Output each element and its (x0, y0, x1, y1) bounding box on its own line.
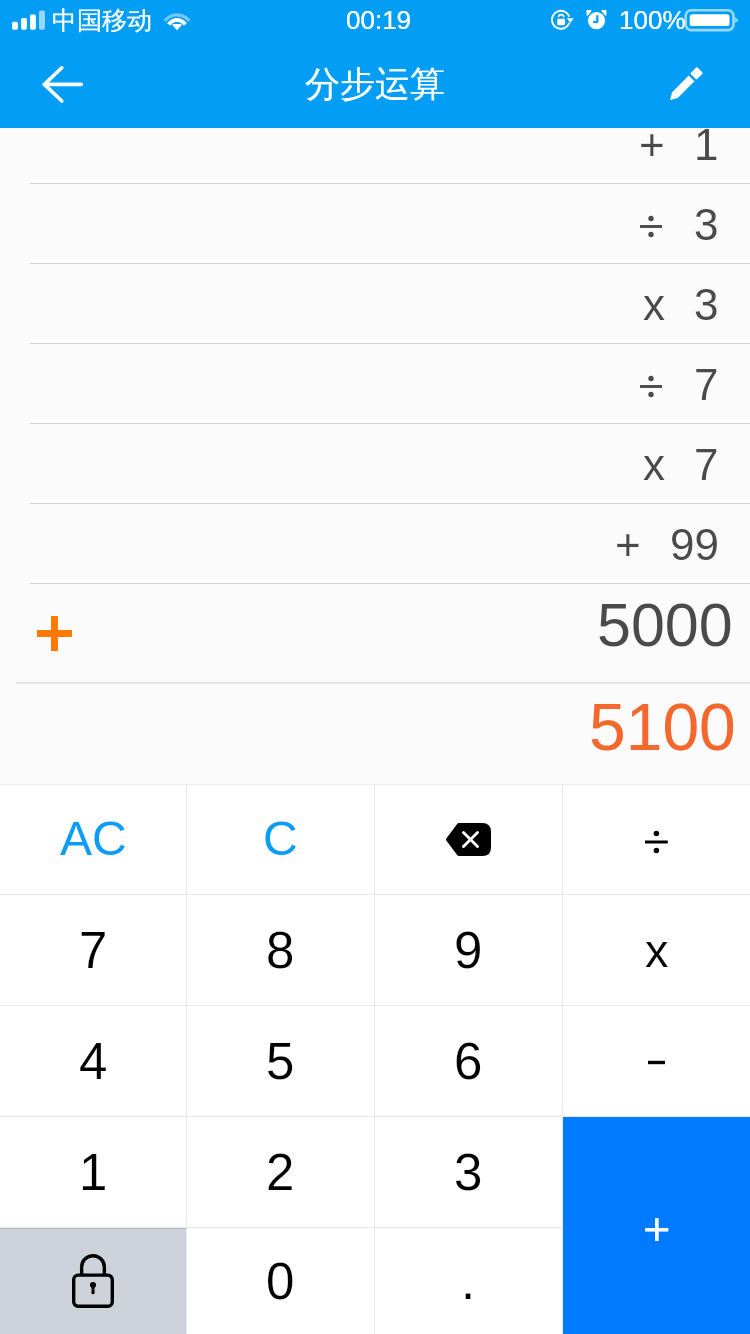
button[interactable]: x (563, 895, 750, 1005)
button[interactable]: 7 (0, 895, 186, 1005)
staticText: 100% (619, 5, 686, 34)
staticText: + (615, 520, 641, 569)
staticText: 2 (266, 1144, 295, 1201)
button[interactable]: Edit (640, 40, 750, 128)
staticText: + (643, 1202, 671, 1255)
staticText: . (461, 1253, 476, 1310)
staticText: 5100 (589, 690, 736, 764)
staticText: 5000 (597, 591, 733, 659)
staticText: + (639, 120, 665, 169)
staticText: 1 (694, 120, 719, 169)
staticText: C (263, 812, 298, 866)
button[interactable]: AC (0, 784, 186, 894)
staticText: 99 (670, 520, 719, 569)
button[interactable]: 3 (0, 184, 750, 264)
staticText: AC (60, 812, 127, 866)
button[interactable]: 6 (375, 1006, 562, 1116)
staticText: 分步运算 (305, 62, 445, 106)
staticText: 中国移动 (52, 5, 152, 36)
button[interactable]: Backspace (375, 784, 562, 894)
button[interactable]: 1 (0, 1117, 186, 1227)
staticText: 1 (79, 1144, 108, 1201)
button[interactable]: + (563, 1117, 750, 1334)
button[interactable]: x (0, 424, 750, 504)
staticText: 9 (454, 922, 483, 979)
button[interactable]: . (375, 1228, 562, 1334)
button[interactable]: x (0, 264, 750, 344)
button[interactable]: Back (0, 40, 125, 128)
staticText: x (643, 440, 665, 489)
button[interactable]: 7 (0, 344, 750, 424)
staticText: 6 (454, 1033, 483, 1090)
button[interactable]: C (187, 784, 374, 894)
button[interactable]: 3 (375, 1117, 562, 1227)
staticText: 3 (454, 1144, 483, 1201)
staticText: 3 (694, 200, 719, 249)
button[interactable]: 2 (187, 1117, 374, 1227)
staticText: 7 (694, 360, 719, 409)
button[interactable] (563, 1006, 750, 1116)
button[interactable]: Lock (0, 1228, 186, 1334)
button[interactable]: 5000 (0, 584, 750, 684)
staticText: 0 (266, 1253, 295, 1310)
staticText: 5 (266, 1033, 295, 1090)
button[interactable]: 4 (0, 1006, 186, 1116)
staticText: 7 (694, 440, 719, 489)
button[interactable]: 9 (375, 895, 562, 1005)
staticText: 7 (79, 922, 108, 979)
staticText: x (645, 924, 669, 977)
staticText: 3 (694, 280, 719, 329)
button[interactable]: + (0, 504, 750, 584)
button[interactable]: 8 (187, 895, 374, 1005)
button[interactable]: 5 (187, 1006, 374, 1116)
button[interactable]: + (0, 104, 750, 184)
button[interactable] (563, 784, 750, 894)
staticText: 4 (79, 1033, 108, 1090)
staticText: x (643, 280, 665, 329)
staticText: 8 (266, 922, 295, 979)
button[interactable]: 0 (187, 1228, 374, 1334)
staticText: 00:19 (346, 5, 412, 34)
